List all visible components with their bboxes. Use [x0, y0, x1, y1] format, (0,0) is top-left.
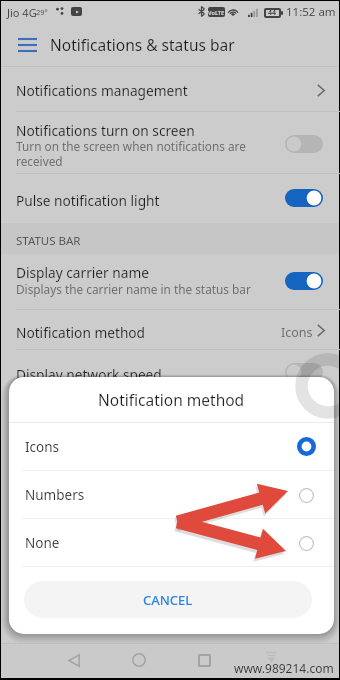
staticText: 11:52 am	[286, 4, 336, 20]
staticText: Pulse notification light	[16, 191, 160, 210]
staticText: Notification method	[98, 389, 245, 410]
button[interactable]: Display carrier name	[1, 250, 339, 310]
staticText: Numbers	[25, 486, 85, 504]
staticText: VoLTE	[208, 9, 225, 16]
staticText: None	[25, 534, 60, 552]
staticText: Icons	[25, 438, 60, 456]
staticText: 44	[268, 8, 277, 18]
button[interactable]: Icons	[9, 422, 334, 471]
button[interactable]: Numbers	[9, 471, 334, 519]
button[interactable]: Display network speed	[1, 350, 339, 397]
button[interactable]: None	[9, 519, 334, 567]
staticText: Display network speed	[16, 365, 162, 384]
button[interactable]: Switch off	[284, 134, 324, 154]
staticText: Display carrier name	[16, 263, 149, 282]
button[interactable]: Notification method	[1, 310, 339, 350]
button[interactable]: Switch on	[284, 271, 324, 291]
staticText: 29°	[36, 7, 48, 17]
staticText: Turn on the screen when notifications ar…	[16, 138, 246, 154]
button[interactable]: Switch on	[284, 188, 324, 208]
button[interactable]: Menu	[10, 33, 44, 57]
button[interactable]: CANCEL	[24, 581, 312, 618]
staticText: STATUS BAR	[16, 233, 81, 249]
button[interactable]: Hide keyboard	[253, 643, 289, 671]
staticText: received	[16, 153, 63, 169]
staticText: CANCEL	[143, 591, 193, 609]
button[interactable]: Switch off	[284, 362, 324, 382]
button[interactable]: Pulse notification light	[1, 174, 339, 221]
staticText: Notification method	[16, 323, 146, 342]
staticText: Notifications turn on screen	[16, 121, 195, 140]
button[interactable]: Notifications turn on screen	[1, 112, 339, 174]
button[interactable]: Recents	[184, 643, 224, 677]
staticText: Icons	[281, 324, 313, 341]
staticText: www.989214.com	[234, 660, 334, 676]
staticText: Jio 4G	[7, 5, 37, 20]
staticText: Displays the carrier name in the status …	[16, 281, 251, 297]
staticText: Notifications & status bar	[50, 34, 235, 55]
button[interactable]: Home	[119, 643, 159, 677]
staticText: Notifications management	[16, 81, 188, 100]
button[interactable]: Notifications management	[1, 67, 339, 112]
button[interactable]: Back	[54, 643, 94, 677]
